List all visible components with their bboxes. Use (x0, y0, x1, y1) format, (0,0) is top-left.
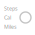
staticText: Steps (4, 5, 18, 12)
staticText: Cal (4, 14, 11, 21)
staticText: Miles (4, 23, 17, 30)
